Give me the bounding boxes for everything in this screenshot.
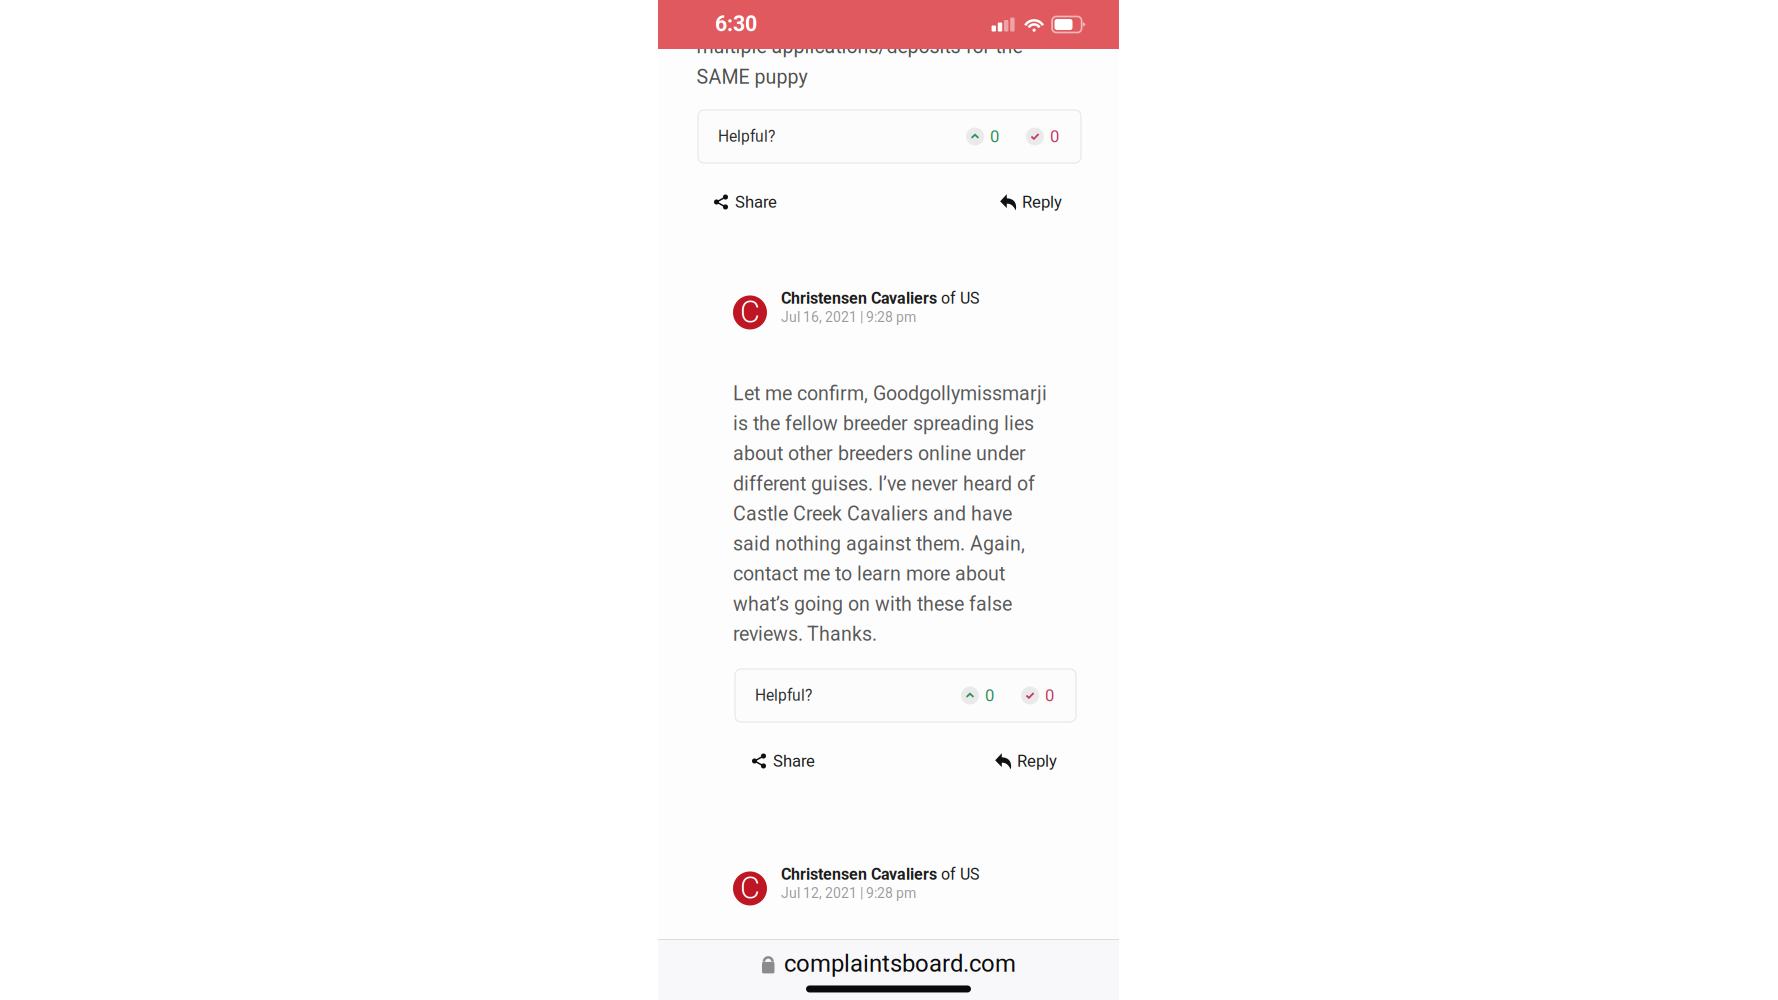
staticText: C (740, 870, 760, 906)
staticText: SAME puppy (696, 65, 807, 88)
staticText: Jul 12, 2021 | 9:28 pm (781, 885, 916, 901)
staticText: Jul 16, 2021 | 9:28 pm (781, 309, 916, 325)
staticText: Let me confirm, Goodgollymissmarji is th… (733, 382, 1047, 645)
staticText: 0 (985, 686, 994, 705)
button[interactable]: C (732, 291, 992, 331)
staticText: 0 (1050, 127, 1059, 146)
staticText: 0 (1045, 686, 1054, 705)
button[interactable]: Reply (1000, 192, 1062, 212)
staticText: Reply (1022, 192, 1062, 212)
button[interactable]: Helpful? (735, 669, 1076, 722)
button[interactable]: Share (751, 751, 815, 771)
staticText: 0 (990, 127, 999, 146)
button[interactable]: Reply (995, 751, 1057, 771)
staticText: 6:30 (715, 11, 757, 36)
staticText: Helpful? (718, 127, 775, 146)
staticText: Christensen Cavaliers (781, 865, 937, 884)
staticText: Helpful? (755, 686, 812, 705)
staticText: Share (735, 192, 777, 212)
staticText: C (740, 294, 760, 330)
staticText: of US (937, 865, 980, 884)
button[interactable]: C (732, 867, 992, 907)
staticText: Christensen Cavaliers (781, 289, 937, 308)
staticText: Reply (1017, 751, 1057, 771)
staticText: complaintsboard.com (784, 949, 1016, 977)
staticText: of US (937, 289, 980, 308)
button[interactable]: complaintsboard.com (761, 949, 1016, 977)
staticText: multiple applications/deposits for the (696, 35, 1022, 58)
button[interactable]: Share (713, 192, 777, 212)
staticText: Share (773, 751, 815, 771)
button[interactable]: Helpful? (698, 110, 1081, 163)
